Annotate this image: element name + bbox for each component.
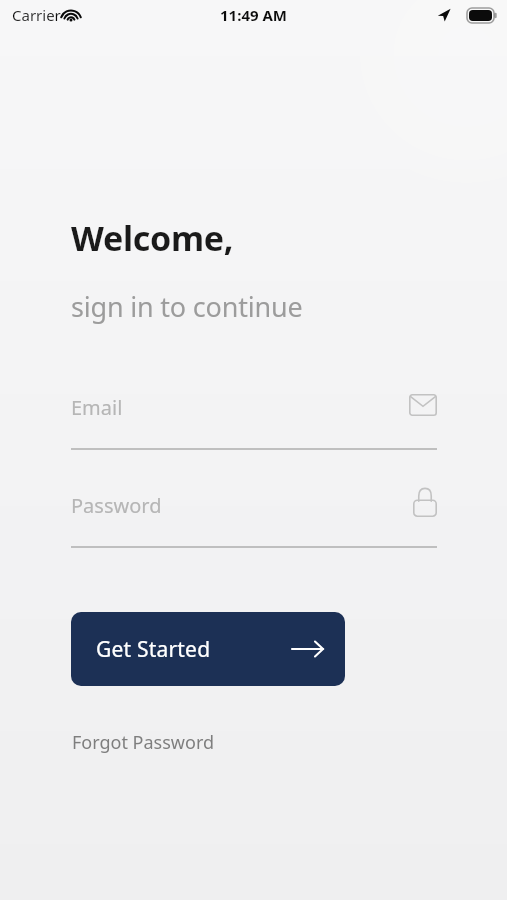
staticText: 11:49 AM [220, 5, 287, 25]
staticText: Carrier [12, 5, 61, 25]
staticText: sign in to continue [71, 288, 303, 325]
staticText: Welcome, [71, 215, 234, 261]
button[interactable]: Forgot Password [71, 726, 216, 759]
staticText: Get Started [96, 635, 211, 664]
other: Location [437, 8, 451, 22]
button[interactable]: Password [71, 484, 437, 548]
button[interactable]: Email [71, 386, 437, 450]
other: Battery [467, 8, 497, 23]
other: Continue [292, 640, 324, 658]
staticText: Forgot Password [72, 730, 215, 755]
button[interactable]: Get Started [71, 612, 345, 686]
staticText: Email [71, 394, 123, 421]
staticText: Password [71, 492, 162, 519]
